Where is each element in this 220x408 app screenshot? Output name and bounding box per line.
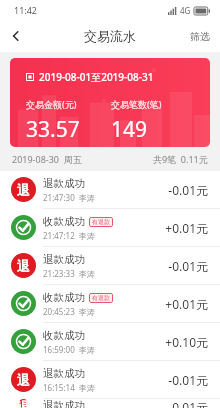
staticText: -0.01元	[168, 399, 208, 408]
staticText: 交易金额(元)	[26, 98, 77, 110]
staticText: 21:47:12 李涛	[43, 230, 95, 241]
button[interactable]: 退	[0, 399, 220, 408]
staticText: 退	[17, 258, 30, 274]
button[interactable]: 2019-08-01至2019-08-31	[10, 58, 210, 147]
button[interactable]: 筛选	[180, 24, 220, 49]
staticText: -0.01元	[168, 182, 208, 198]
button[interactable]: Back	[0, 20, 32, 52]
staticText: 退款成功	[43, 253, 85, 266]
staticText: 共9笔 0.11元	[153, 153, 208, 165]
button[interactable]: 退	[0, 171, 220, 208]
button[interactable]: 收款成功	[0, 209, 220, 246]
staticText: 退款成功	[43, 177, 85, 190]
staticText: +0.01元	[165, 220, 208, 236]
staticText: +0.01元	[165, 296, 208, 312]
staticText: 退	[17, 182, 30, 198]
button[interactable]: 收款成功	[0, 285, 220, 322]
staticText: 有退款	[92, 294, 110, 302]
staticText: 33.57	[26, 115, 80, 144]
staticText: 有退款	[92, 218, 110, 226]
staticText: -0.01元	[168, 372, 208, 388]
staticText: 21:47:30 李涛	[43, 192, 95, 203]
staticText: 退款成功	[43, 399, 85, 408]
staticText: -0.01元	[168, 258, 208, 274]
staticText: 21:23:33 李涛	[43, 268, 95, 279]
staticText: 收款成功	[43, 329, 85, 342]
button[interactable]: 退	[0, 361, 220, 398]
staticText: 2019-08-30 周五	[12, 153, 82, 165]
button[interactable]: 收款成功	[0, 323, 220, 360]
staticText: 4G	[180, 5, 191, 16]
staticText: 20:45:23 李涛	[43, 306, 95, 317]
staticText: 交易流水	[84, 28, 136, 44]
staticText: 2019-08-01至2019-08-31	[39, 70, 154, 84]
staticText: 11:42	[14, 4, 38, 16]
staticText: 退	[17, 399, 30, 408]
staticText: 149	[111, 115, 148, 144]
staticText: 收款成功	[43, 291, 85, 304]
staticText: 筛选	[190, 30, 210, 43]
staticText: 16:59:00 李涛	[43, 344, 95, 355]
staticText: +0.10元	[165, 334, 208, 350]
staticText: 收款成功	[43, 215, 85, 228]
staticText: 退款成功	[43, 367, 85, 380]
button[interactable]: 退	[0, 247, 220, 284]
staticText: 16:15:14 李涛	[43, 382, 95, 393]
staticText: 退	[17, 372, 30, 388]
staticText: 交易笔数(笔)	[111, 98, 162, 110]
